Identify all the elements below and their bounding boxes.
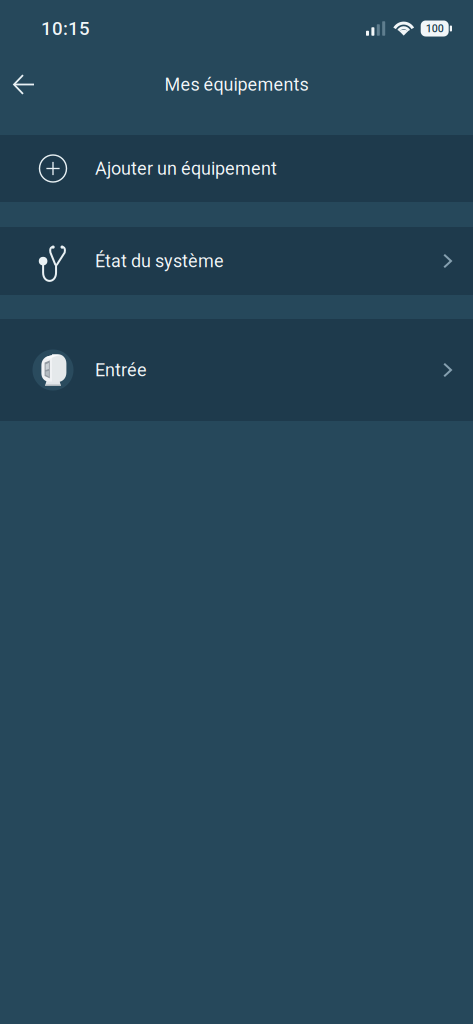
staticText: État du système — [95, 250, 224, 272]
staticText: Mes équipements — [164, 74, 308, 95]
button[interactable]: Back — [2, 62, 46, 106]
staticText: 10:15 — [41, 18, 90, 39]
staticText: 100 — [426, 22, 444, 35]
staticText: Ajouter un équipement — [95, 158, 277, 179]
button[interactable]: Ajouter un équipement — [0, 135, 473, 202]
staticText: Entrée — [95, 359, 147, 381]
button[interactable]: Entrée — [0, 319, 473, 421]
button[interactable]: État du système — [0, 227, 473, 295]
